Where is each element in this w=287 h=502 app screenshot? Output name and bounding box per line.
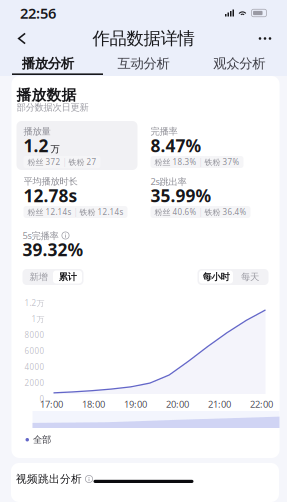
staticText: 铁粉 37% xyxy=(204,157,239,167)
staticText: 视频跳出分析 xyxy=(16,472,82,485)
staticText: 粉丝 372 xyxy=(27,157,60,167)
staticText: 5s完播率 xyxy=(22,229,58,242)
staticText: 粉丝 40.6% xyxy=(154,207,196,217)
staticText: 粉丝 12.14s xyxy=(27,207,71,217)
staticText: 粉丝 18.3% xyxy=(154,157,196,167)
staticText: 累计 xyxy=(58,271,76,283)
staticText: 每天 xyxy=(241,271,259,283)
button[interactable]: 每天 xyxy=(233,270,267,283)
staticText: 1.2 xyxy=(23,134,48,157)
staticText: 铁粉 36.4% xyxy=(204,207,246,217)
button[interactable]: 观众分析 xyxy=(191,50,287,76)
staticText: 播放分析 xyxy=(22,55,74,72)
staticText: 6000 xyxy=(24,346,44,356)
staticText: 2s跳出率 xyxy=(150,175,186,188)
staticText: 35.99% xyxy=(150,184,211,207)
staticText: 每小时 xyxy=(202,271,229,283)
button[interactable]: Back xyxy=(8,26,36,50)
staticText: 新增 xyxy=(29,271,47,283)
staticText: 观众分析 xyxy=(213,55,265,72)
button[interactable]: More options xyxy=(251,26,279,50)
staticText: 全部 xyxy=(33,434,51,445)
button[interactable]: 播放分析 xyxy=(0,50,96,76)
staticText: 12.78s xyxy=(23,184,77,207)
staticText: 完播率 xyxy=(150,126,177,137)
staticText: 播放数据 xyxy=(16,86,76,104)
staticText: 39.32% xyxy=(22,238,83,261)
staticText: | xyxy=(196,207,204,217)
staticText: 0 xyxy=(39,394,44,404)
staticText: 22:00 xyxy=(250,398,273,410)
staticText: 1.2万 xyxy=(24,298,44,308)
staticText: 铁粉 12.14s xyxy=(79,207,123,217)
button[interactable]: 2s跳出率 xyxy=(143,171,264,220)
button[interactable]: 平均播放时长 xyxy=(16,171,137,220)
staticText: 8000 xyxy=(24,330,44,340)
staticText: 互动分析 xyxy=(117,55,169,72)
staticText: 8.47% xyxy=(150,134,201,157)
staticText: | xyxy=(196,157,204,167)
button[interactable]: 互动分析 xyxy=(96,50,191,76)
staticText: 19:00 xyxy=(124,398,147,410)
button[interactable]: 完播率 xyxy=(143,121,264,170)
staticText: 万 xyxy=(50,143,59,155)
button[interactable]: 每小时 xyxy=(199,270,233,283)
button[interactable]: 播放量 xyxy=(16,121,137,170)
staticText: 铁粉 27 xyxy=(68,157,96,167)
staticText: | xyxy=(60,157,68,167)
staticText: 1万 xyxy=(31,314,44,324)
staticText: 21:00 xyxy=(208,398,231,410)
staticText: 播放量 xyxy=(23,126,50,137)
button[interactable]: 新增 xyxy=(24,270,53,283)
staticText: 20:00 xyxy=(166,398,189,410)
staticText: | xyxy=(71,207,79,217)
staticText: 作品数据详情 xyxy=(92,28,194,49)
staticText: 2000 xyxy=(24,378,44,388)
staticText: 18:00 xyxy=(82,398,105,410)
staticText: 部分数据次日更新 xyxy=(16,102,88,113)
staticText: 17:00 xyxy=(40,398,63,410)
staticText: 4000 xyxy=(24,362,44,372)
staticText: 平均播放时长 xyxy=(23,176,77,187)
staticText: 22:56 xyxy=(20,3,56,23)
button[interactable]: 累计 xyxy=(53,270,82,283)
